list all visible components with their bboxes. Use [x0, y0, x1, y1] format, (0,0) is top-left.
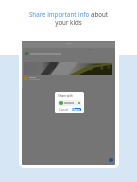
staticText: Share important info about your kids [26, 10, 111, 26]
staticText: Share [72, 108, 81, 111]
staticText: Cancel [59, 108, 69, 111]
button[interactable]: Share [72, 108, 81, 111]
button[interactable]: Page indicator [109, 158, 113, 162]
button[interactable]: Cancel [58, 108, 70, 111]
staticText: Share with [58, 94, 73, 98]
